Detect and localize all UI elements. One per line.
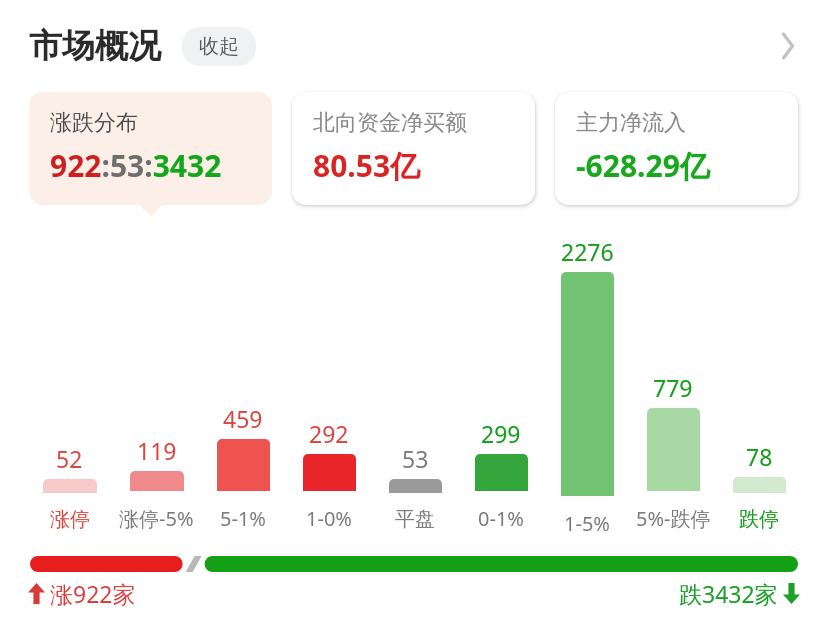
staticText: -628.29亿: [576, 145, 710, 186]
staticText: 涨跌分布: [50, 109, 138, 137]
button[interactable]: 459: [200, 236, 286, 532]
button[interactable]: 292: [286, 236, 372, 532]
staticText: 收起: [199, 34, 239, 59]
staticText: 涨922家: [50, 578, 136, 609]
staticText: 292: [309, 418, 349, 449]
staticText: 涨停-5%: [119, 505, 194, 532]
button[interactable]: [30, 556, 798, 572]
staticText: 1-0%: [306, 505, 352, 532]
button[interactable]: 涨922家: [28, 578, 136, 609]
button[interactable]: 跌3432家: [679, 578, 800, 609]
staticText: 市场概况: [29, 25, 161, 67]
staticText: 北向资金净买额: [313, 109, 467, 137]
button[interactable]: 52: [26, 236, 113, 532]
staticText: 5-1%: [220, 505, 266, 532]
button[interactable]: 119: [113, 236, 200, 532]
staticText: 299: [481, 418, 521, 449]
staticText: 2276: [561, 236, 614, 267]
button[interactable]: 2276: [544, 236, 630, 532]
staticText: 459: [223, 403, 263, 434]
staticText: 跌停: [739, 507, 779, 532]
staticText: 52: [56, 443, 83, 474]
button[interactable]: 779: [630, 236, 716, 532]
button[interactable]: 北向资金净买额: [292, 92, 535, 205]
staticText: 779: [653, 372, 693, 403]
staticText: 跌3432家: [679, 578, 778, 609]
button[interactable]: 主力净流入: [555, 92, 798, 205]
button[interactable]: 展开详情: [766, 24, 810, 68]
button[interactable]: 78: [716, 236, 802, 532]
staticText: 922:53:3432: [50, 145, 222, 186]
staticText: 涨停: [50, 507, 90, 532]
staticText: 119: [137, 435, 177, 466]
staticText: 80.53亿: [313, 145, 421, 186]
staticText: 1-5%: [564, 510, 610, 532]
staticText: 0-1%: [478, 505, 524, 532]
staticText: 53: [402, 443, 429, 474]
staticText: 平盘: [395, 507, 435, 532]
staticText: 主力净流入: [576, 109, 686, 137]
button[interactable]: 涨跌分布: [29, 92, 272, 205]
button[interactable]: 53: [372, 236, 458, 532]
button[interactable]: 收起: [182, 27, 256, 66]
button[interactable]: 299: [458, 236, 544, 532]
staticText: 78: [746, 441, 773, 472]
staticText: 5%-跌停: [636, 505, 711, 532]
